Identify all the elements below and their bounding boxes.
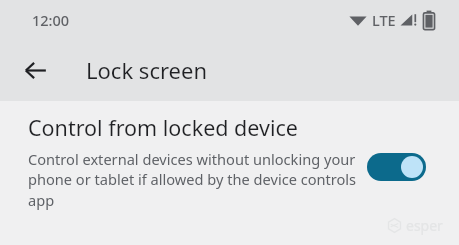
staticText: 12:00 bbox=[32, 10, 70, 30]
staticText: Control external devices without unlocki… bbox=[28, 149, 360, 211]
button[interactable]: Back bbox=[17, 52, 53, 88]
button[interactable]: Control from locked device toggle, on bbox=[367, 153, 426, 181]
staticText: LTE bbox=[372, 10, 396, 30]
staticText: esper bbox=[406, 216, 443, 235]
staticText: Control from locked device bbox=[28, 113, 298, 142]
staticText: Lock screen bbox=[86, 55, 208, 85]
